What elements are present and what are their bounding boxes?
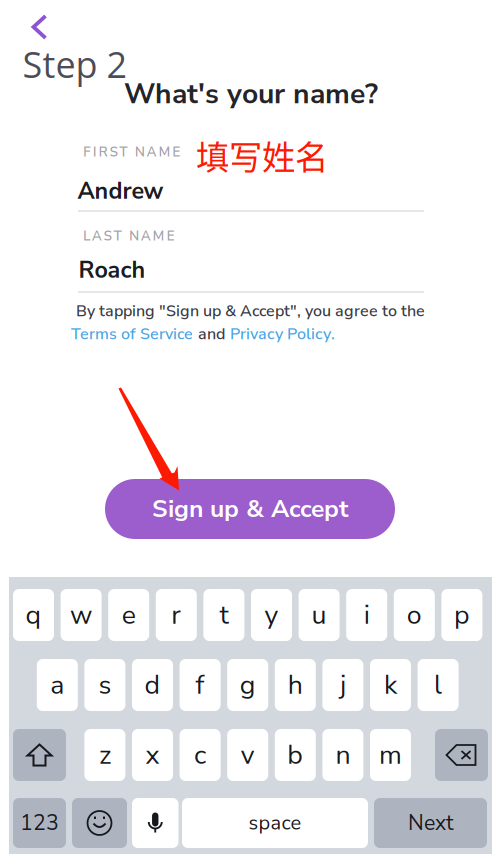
button[interactable]: x — [132, 729, 173, 781]
staticText: x — [145, 737, 159, 773]
button[interactable]: h — [275, 659, 316, 711]
staticText: b — [287, 737, 303, 773]
staticText: LAST NAME — [83, 227, 174, 245]
button[interactable]: d — [132, 659, 173, 711]
button[interactable]: q — [13, 589, 54, 641]
staticText: y — [264, 597, 278, 633]
staticText: Roach — [78, 254, 145, 286]
staticText: j — [340, 667, 346, 703]
staticText: s — [98, 667, 111, 703]
button[interactable]: a — [37, 659, 78, 711]
staticText: What's your name? — [124, 75, 378, 113]
button[interactable]: j — [322, 659, 363, 711]
button[interactable]: n — [322, 729, 363, 781]
button[interactable]: Sign up & Accept — [105, 479, 395, 539]
button[interactable]: p — [441, 589, 482, 641]
button[interactable]: Back — [17, 4, 61, 50]
button[interactable]: m — [370, 729, 411, 781]
staticText: and — [198, 323, 225, 345]
button[interactable]: o — [394, 589, 435, 641]
button[interactable]: Emoji — [72, 798, 127, 848]
button[interactable]: u — [299, 589, 340, 641]
button[interactable]: k — [370, 659, 411, 711]
button[interactable]: l — [418, 659, 459, 711]
button[interactable]: f — [180, 659, 221, 711]
staticText: g — [240, 667, 256, 703]
button[interactable]: s — [84, 659, 125, 711]
staticText: r — [171, 597, 181, 633]
button[interactable]: Delete — [435, 729, 488, 781]
button[interactable]: c — [180, 729, 221, 781]
staticText: a — [50, 667, 64, 703]
button[interactable]: z — [84, 729, 125, 781]
staticText: k — [384, 667, 397, 703]
staticText: Terms of Service — [71, 323, 193, 345]
staticText: m — [379, 737, 402, 773]
staticText: Next — [408, 808, 453, 838]
button[interactable]: r — [156, 589, 197, 641]
staticText: f — [196, 667, 205, 703]
staticText: d — [144, 667, 160, 703]
button[interactable]: v — [227, 729, 268, 781]
button[interactable]: Next — [374, 798, 487, 848]
button[interactable]: Privacy Policy. — [230, 323, 335, 345]
button[interactable]: space — [182, 798, 368, 848]
staticText: Step 2 — [22, 39, 127, 88]
button[interactable]: w — [61, 589, 102, 641]
staticText: t — [219, 597, 228, 633]
staticText: q — [25, 597, 41, 633]
staticText: FIRST NAME — [83, 143, 180, 161]
staticText: space — [248, 809, 301, 837]
staticText: u — [312, 597, 327, 633]
button[interactable]: e — [108, 589, 149, 641]
staticText: l — [434, 667, 442, 703]
button[interactable]: 123 — [13, 798, 66, 848]
button[interactable]: i — [346, 589, 387, 641]
staticText: By tapping "Sign up & Accept", you agree… — [76, 300, 425, 322]
staticText: z — [99, 737, 111, 773]
button[interactable]: Terms of Service — [71, 323, 193, 345]
button[interactable]: Dictate — [132, 798, 178, 848]
staticText: Privacy Policy. — [230, 323, 335, 345]
staticText: w — [70, 597, 92, 633]
staticText: i — [364, 597, 370, 633]
staticText: o — [407, 597, 422, 633]
button[interactable]: b — [275, 729, 316, 781]
staticText: h — [288, 667, 303, 703]
staticText: Sign up & Accept — [152, 492, 348, 526]
button[interactable]: g — [227, 659, 268, 711]
staticText: e — [122, 597, 136, 633]
staticText: n — [335, 737, 350, 773]
staticText: p — [454, 597, 470, 633]
staticText: c — [194, 737, 206, 773]
staticText: 123 — [20, 808, 59, 838]
button[interactable]: t — [203, 589, 244, 641]
staticText: Andrew — [77, 175, 163, 207]
staticText: 填写姓名 — [196, 131, 328, 179]
staticText: v — [241, 737, 255, 773]
button[interactable]: Shift — [13, 729, 66, 781]
button[interactable]: y — [251, 589, 292, 641]
